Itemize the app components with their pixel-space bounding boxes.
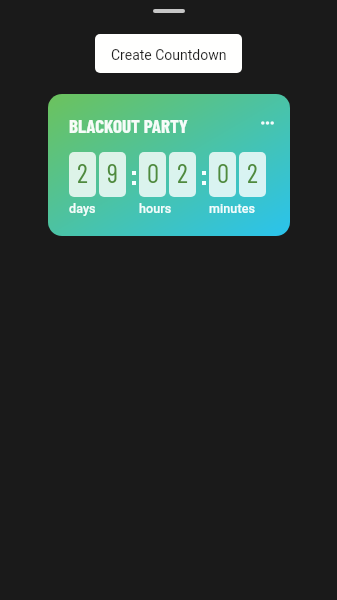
staticText: 2 [177, 156, 188, 188]
staticText: hours [139, 201, 172, 216]
button[interactable]: Create Countdown [95, 34, 242, 73]
staticText: 2 [247, 156, 258, 188]
button[interactable]: More options [253, 109, 281, 137]
staticText: 0 [217, 156, 229, 188]
staticText: minutes [209, 201, 256, 216]
staticText: Create Countdown [111, 47, 227, 63]
button[interactable]: BLACKOUT PARTY [48, 94, 290, 236]
staticText: 0 [147, 156, 159, 188]
staticText: days [69, 201, 96, 216]
staticText: 9 [107, 156, 118, 188]
staticText: 2 [77, 156, 88, 188]
staticText: BLACKOUT PARTY [69, 114, 188, 137]
